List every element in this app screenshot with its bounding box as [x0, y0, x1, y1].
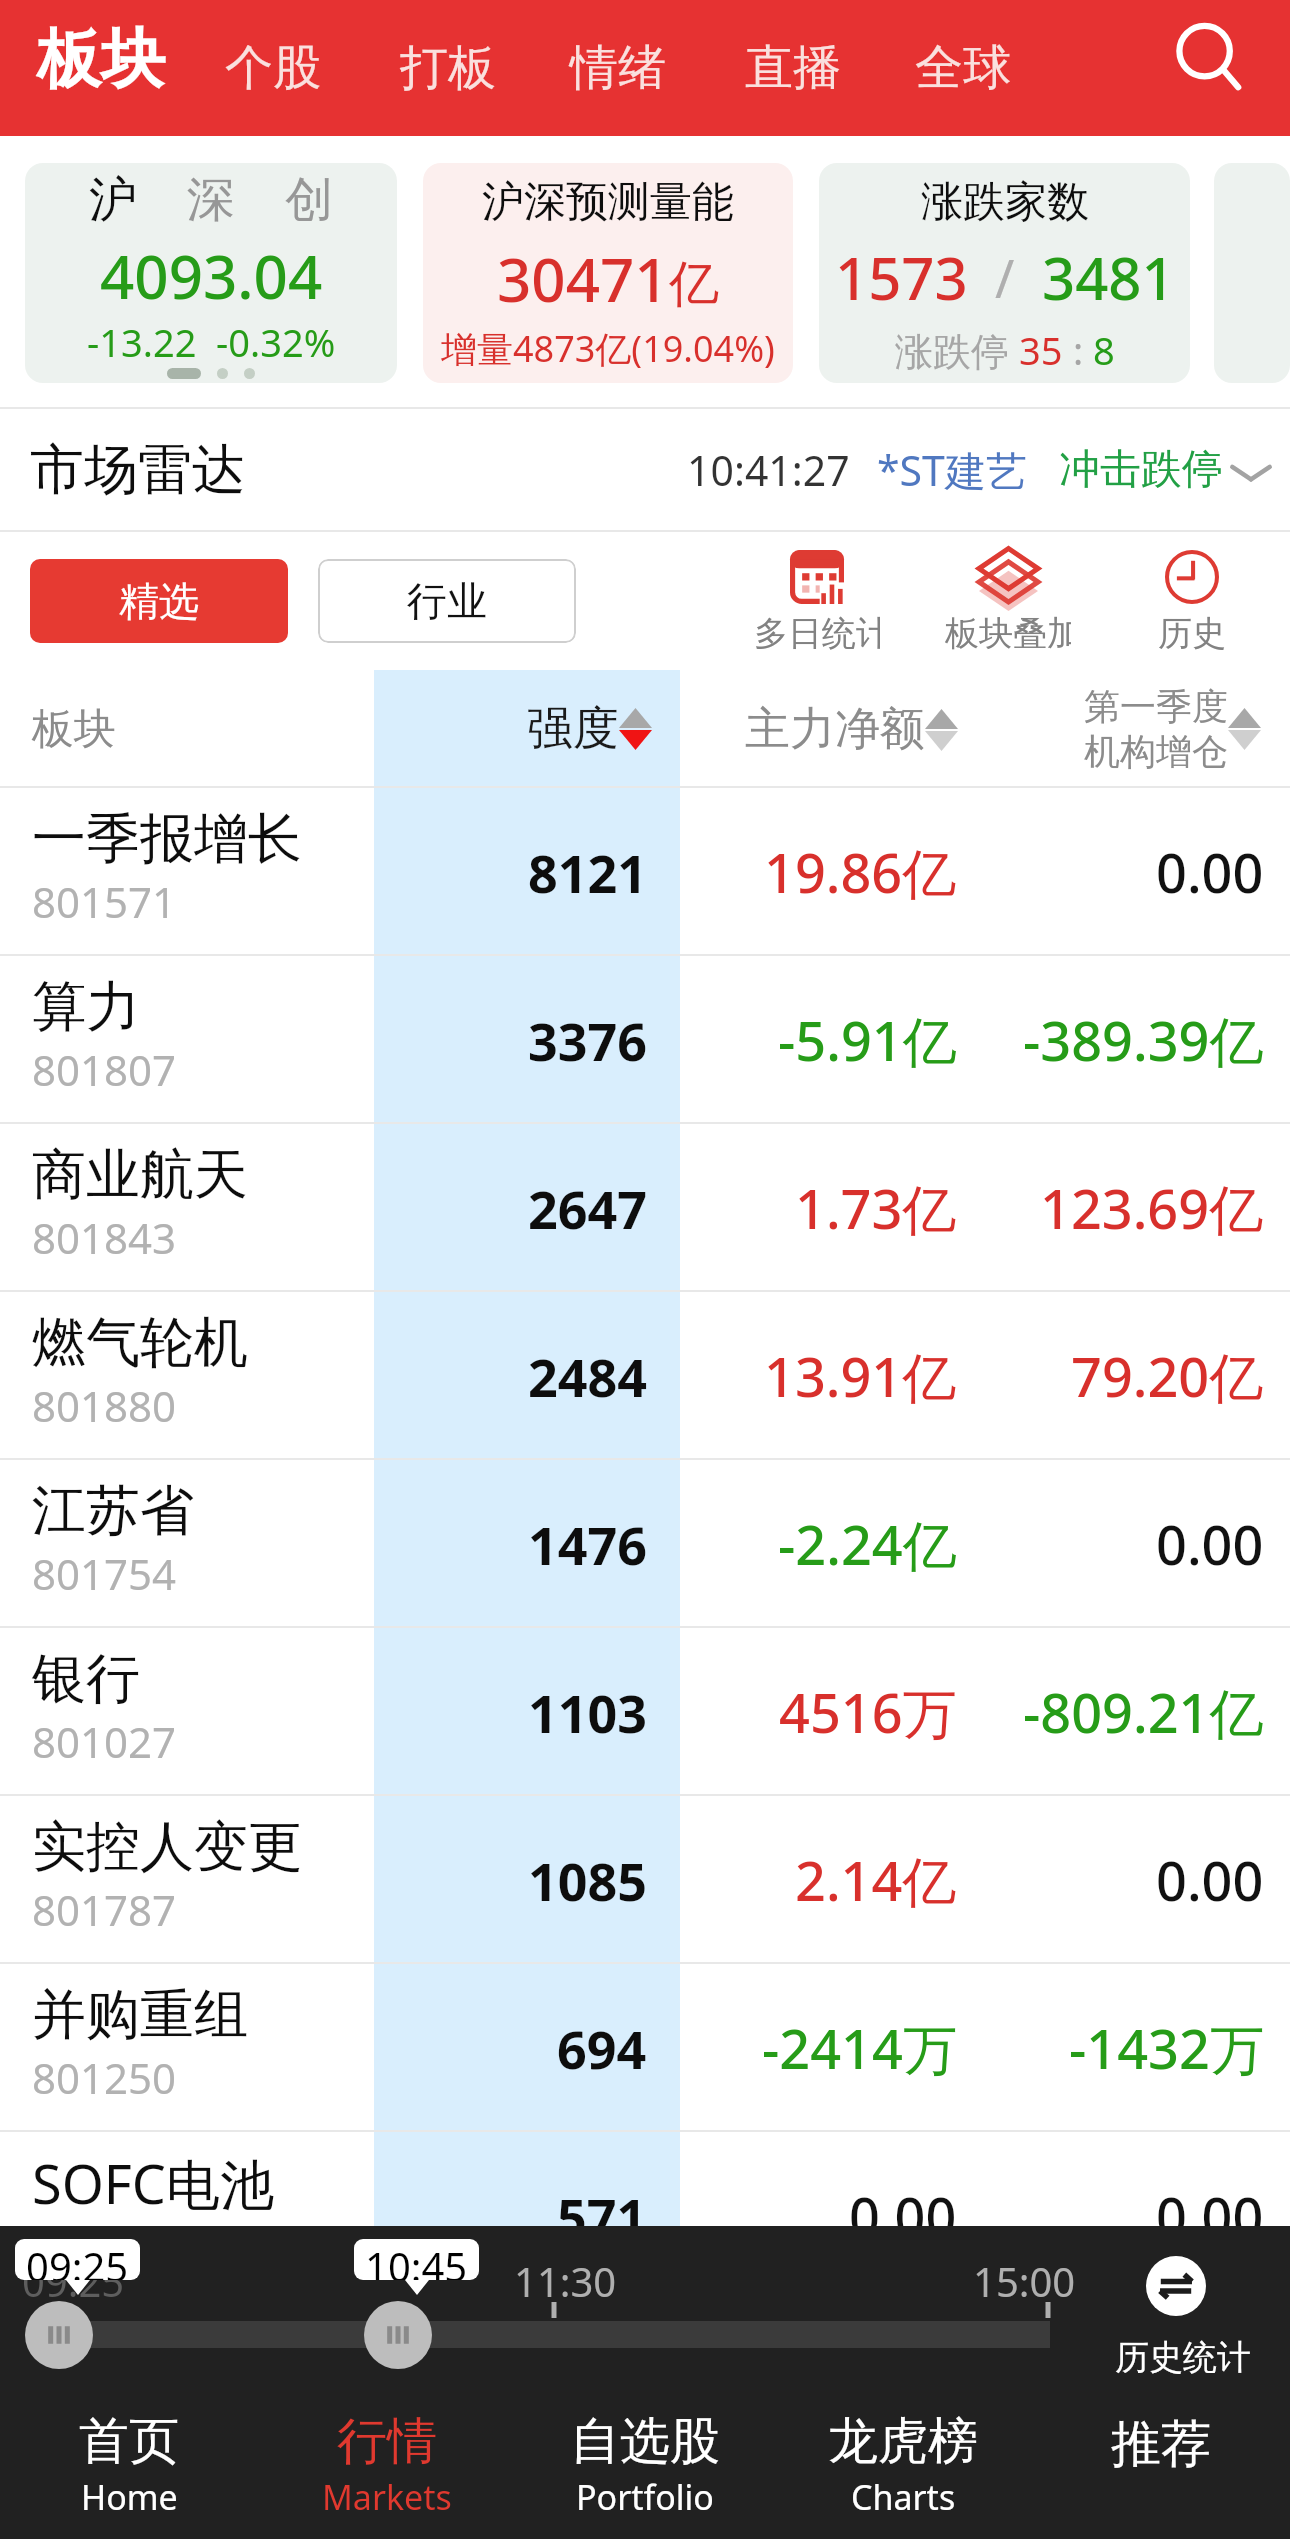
staticText: 强度	[527, 700, 619, 758]
button[interactable]: 首页	[0, 2390, 258, 2539]
staticText: 商业航天	[32, 1141, 248, 1209]
staticText: -809.21亿	[1023, 1675, 1264, 1749]
staticText: 自选股	[570, 2410, 720, 2473]
button[interactable]: 行业	[318, 559, 576, 643]
staticText: 燃气轮机	[32, 1309, 248, 1377]
button[interactable]: 历史	[1155, 548, 1229, 655]
staticText: 银行	[32, 1645, 140, 1713]
staticText: 2647	[528, 1173, 647, 1244]
staticText: 1103	[528, 1677, 647, 1748]
button[interactable]: 实控人变更	[0, 1796, 1290, 1964]
staticText: 1.73亿	[795, 1171, 957, 1245]
button[interactable]: 多日统计	[752, 548, 882, 655]
button[interactable]: 行情	[258, 2390, 516, 2539]
staticText: 涨跌停	[895, 324, 1019, 376]
staticText: 1573	[835, 238, 968, 317]
staticText: 801250	[32, 2049, 177, 2106]
button[interactable]: SOFC电池	[0, 2132, 1290, 2226]
staticText: SOFC电池	[32, 2146, 274, 2220]
staticText: 第一季度	[1084, 684, 1228, 729]
button[interactable]: 沪深预测量能	[423, 163, 793, 383]
staticText: -13.22 -0.32%	[87, 316, 336, 368]
staticText: 4093.04	[100, 235, 323, 317]
button[interactable]: 沪	[25, 163, 397, 383]
button[interactable]: Time range handle	[364, 2301, 432, 2369]
staticText: 801787	[32, 1881, 177, 1938]
staticText: 打板	[400, 38, 496, 98]
staticText: Portfolio	[576, 2474, 714, 2520]
staticText: 算力	[32, 973, 140, 1041]
staticText: 30471	[497, 238, 669, 320]
staticText: 沪	[89, 170, 137, 230]
staticText: 801571	[32, 873, 177, 930]
staticText: 801880	[32, 1377, 177, 1434]
button[interactable]: 并购重组	[0, 1964, 1290, 2132]
button[interactable]: 强度	[374, 670, 680, 788]
staticText: 情绪	[570, 38, 666, 98]
button[interactable]: 主力净额	[680, 670, 978, 788]
staticText: 推荐	[1111, 2413, 1211, 2476]
staticText: 3376	[528, 1005, 647, 1076]
staticText: 3481	[1042, 238, 1175, 317]
staticText: 并购重组	[32, 1981, 248, 2049]
button[interactable]: 龙虎榜	[774, 2390, 1032, 2539]
staticText: 15:00	[973, 2254, 1076, 2308]
staticText: 1476	[528, 1509, 647, 1580]
button[interactable]: 第一季度	[978, 670, 1276, 788]
staticText: 一季报增长	[32, 805, 302, 873]
staticText: 精选	[119, 576, 199, 626]
button[interactable]: 推荐	[1032, 2390, 1290, 2539]
button[interactable]: 算力	[0, 956, 1290, 1124]
staticText: 板块	[37, 19, 165, 100]
button[interactable]: 自选股	[516, 2390, 774, 2539]
button[interactable]: 银行	[0, 1628, 1290, 1796]
button[interactable]: 商业航天	[0, 1124, 1290, 1292]
button[interactable]: Search	[1165, 14, 1261, 110]
button[interactable]: 燃气轮机	[0, 1292, 1290, 1460]
button[interactable]: Time range handle	[25, 2301, 93, 2369]
button[interactable]: Switch to history statistics	[1136, 2246, 1216, 2326]
staticText: 创	[285, 170, 333, 230]
staticText: -2414万	[762, 2011, 957, 2085]
staticText: 0.00	[1156, 835, 1264, 909]
button[interactable]: 个股	[211, 0, 335, 136]
staticText: 亿	[669, 253, 719, 316]
staticText: 首页	[79, 2410, 179, 2473]
staticText: 沪深预测量能	[482, 176, 734, 229]
button[interactable]: 板块	[19, 0, 183, 127]
staticText: 历史统计	[1115, 2336, 1251, 2379]
staticText: 实控人变更	[32, 1813, 302, 1881]
staticText: Charts	[851, 2474, 956, 2520]
staticText: 增量4873亿(19.04%)	[441, 324, 775, 373]
button[interactable]: 江苏省	[0, 1460, 1290, 1628]
staticText: 2.14亿	[795, 1843, 957, 1917]
staticText: 801843	[32, 1209, 177, 1266]
staticText: 10:45	[365, 2239, 468, 2280]
staticText: /	[968, 242, 1042, 313]
staticText: -2.24亿	[778, 1507, 957, 1581]
staticText: 机构增仓	[1084, 729, 1228, 774]
staticText: :	[1063, 324, 1093, 376]
button[interactable]: 一季报增长	[0, 788, 1290, 956]
staticText: -5.91亿	[778, 1003, 957, 1077]
button[interactable]: Expand market radar	[1225, 444, 1277, 496]
button[interactable]: 板块叠加	[943, 548, 1073, 655]
staticText: -389.39亿	[1023, 1003, 1264, 1077]
staticText: 09:25	[26, 2239, 129, 2280]
staticText: 571	[557, 2181, 647, 2226]
staticText: 8	[1093, 324, 1115, 376]
staticText: 801027	[32, 1713, 177, 1770]
staticText: Markets	[322, 2474, 452, 2520]
staticText: 801754	[32, 1545, 177, 1602]
staticText: 694	[557, 2013, 647, 2084]
button[interactable]: 全球	[901, 0, 1025, 136]
staticText: 2484	[528, 1341, 647, 1412]
staticText: 多日统计	[754, 612, 880, 655]
button[interactable]: 涨跌家数	[819, 163, 1190, 383]
button[interactable]: 情绪	[556, 0, 680, 136]
button[interactable]: 直播	[731, 0, 855, 136]
button[interactable]: 打板	[386, 0, 510, 136]
staticText: -1432万	[1069, 2011, 1264, 2085]
button[interactable]: 精选	[30, 559, 288, 643]
